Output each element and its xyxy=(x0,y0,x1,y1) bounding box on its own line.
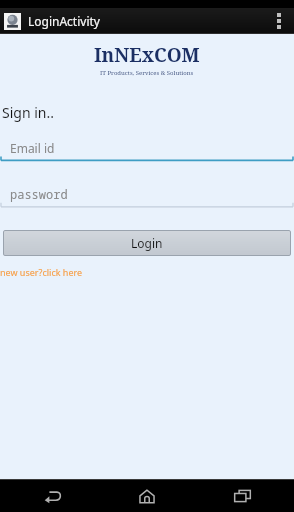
button[interactable]: Back xyxy=(11,480,95,512)
button[interactable]: Recent apps xyxy=(200,480,284,512)
button[interactable]: Email id xyxy=(0,138,294,162)
staticText: InNExCOM xyxy=(94,42,200,68)
button[interactable]: new user?click here xyxy=(0,266,83,278)
staticText: Sign in.. xyxy=(2,103,54,122)
staticText: Email id xyxy=(10,140,55,156)
button[interactable]: Login xyxy=(3,230,291,256)
button[interactable]: Home xyxy=(105,480,189,512)
staticText: Login xyxy=(131,235,163,251)
staticText: password xyxy=(10,186,68,202)
staticText: LoginActivity xyxy=(28,13,100,29)
button[interactable]: password xyxy=(0,184,294,208)
button[interactable]: More options xyxy=(266,8,292,34)
staticText: new user?click here xyxy=(0,266,83,278)
staticText: IT Products, Services & Solutions xyxy=(100,69,194,77)
